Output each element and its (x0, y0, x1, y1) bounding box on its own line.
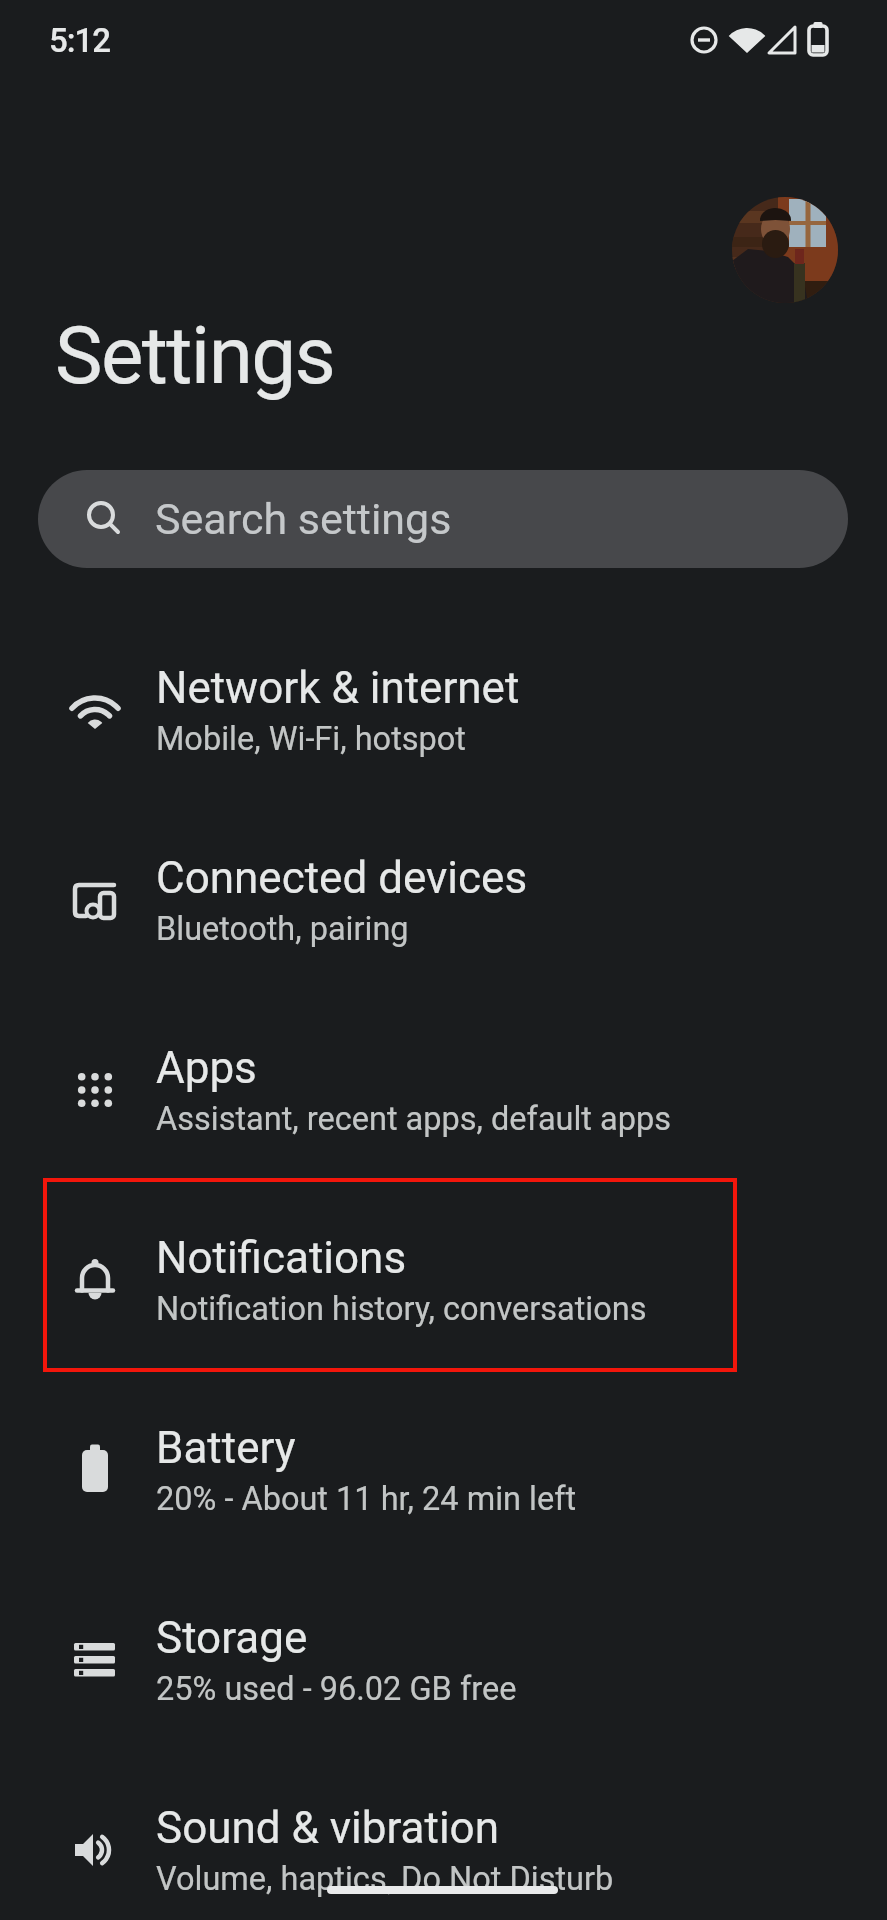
staticText: 5:12 (49, 21, 111, 60)
button[interactable]: Battery (0, 1375, 887, 1565)
staticText: Search settings (155, 494, 452, 544)
staticText: Storage (156, 1612, 308, 1664)
staticText: Notifications (156, 1232, 407, 1284)
button[interactable]: Notifications (0, 1185, 887, 1375)
button[interactable]: Apps (0, 995, 887, 1185)
button[interactable]: Network & internet (0, 615, 887, 805)
staticText: Mobile, Wi-Fi, hotspot (156, 720, 466, 758)
staticText: Battery (156, 1422, 296, 1474)
button[interactable]: Search settings (38, 470, 848, 568)
staticText: 20% - About 11 hr, 24 min left (156, 1480, 577, 1518)
staticText: Volume, haptics, Do Not Disturb (156, 1860, 614, 1898)
staticText: Network & internet (156, 662, 520, 714)
staticText: Notification history, conversations (156, 1290, 647, 1328)
button[interactable] (732, 197, 838, 303)
button[interactable]: Connected devices (0, 805, 887, 995)
staticText: Assistant, recent apps, default apps (156, 1100, 672, 1138)
staticText: Sound & vibration (156, 1802, 499, 1854)
button[interactable]: Sound & vibration (0, 1755, 887, 1920)
staticText: Apps (156, 1042, 257, 1094)
staticText: Settings (55, 309, 335, 403)
staticText: 25% used - 96.02 GB free (156, 1670, 517, 1708)
staticText: Bluetooth, pairing (156, 910, 409, 948)
button[interactable]: Storage (0, 1565, 887, 1755)
staticText: Connected devices (156, 852, 528, 904)
